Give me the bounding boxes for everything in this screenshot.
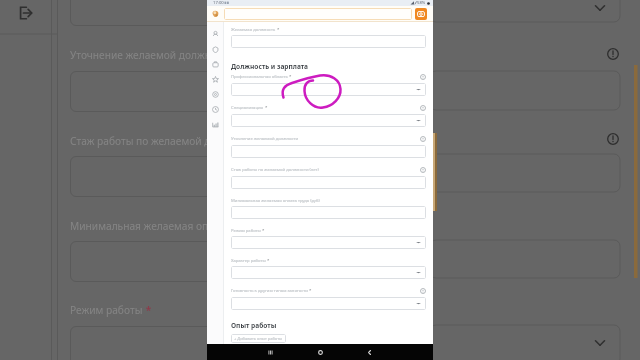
staticText: * <box>261 228 265 234</box>
button[interactable]: Protection <box>208 42 223 57</box>
staticText: * <box>266 258 270 264</box>
staticText: Режим работы <box>70 303 143 317</box>
button[interactable]: Help <box>419 104 426 111</box>
button[interactable]: Profile <box>208 27 223 42</box>
button[interactable]: Back <box>362 345 376 359</box>
staticText: 17:00 <box>213 0 224 6</box>
staticText: Уточнение желаемой должности <box>70 48 234 62</box>
button[interactable] <box>231 145 426 158</box>
staticText: 58% <box>417 0 426 6</box>
button[interactable]: History <box>208 102 223 117</box>
button[interactable]: Help <box>419 287 426 294</box>
staticText: + Добавить опыт работы <box>234 336 283 341</box>
button[interactable]: Take photo <box>415 8 427 20</box>
button[interactable]: + Добавить опыт работы <box>231 334 286 343</box>
button[interactable] <box>70 326 220 360</box>
staticText: * <box>264 105 268 111</box>
staticText: Минимальная желаемая оплата труда <box>70 219 260 233</box>
staticText: * <box>276 27 280 33</box>
staticText: Опыт работы <box>231 321 277 330</box>
staticText: Готовность к другим типам занятости <box>231 288 308 294</box>
staticText: Стаж работы по желаемой должности <box>70 134 259 148</box>
button[interactable]: Home <box>313 345 327 359</box>
button[interactable] <box>231 236 426 249</box>
button[interactable] <box>231 35 426 48</box>
staticText: Характер работы <box>231 258 266 264</box>
staticText: * <box>308 288 312 294</box>
button[interactable] <box>231 206 426 219</box>
staticText: Уточнение желаемой должности <box>231 136 299 142</box>
button[interactable]: Favourites <box>208 72 223 87</box>
staticText: Профессиональная область <box>231 74 288 80</box>
staticText: Специализация <box>231 105 264 111</box>
staticText: Стаж работы по желаемой должности (лет) <box>231 167 319 173</box>
button[interactable] <box>231 114 426 127</box>
staticText: Режим работы <box>231 228 261 234</box>
staticText: Должность и зарплата <box>231 62 309 71</box>
button[interactable]: Help <box>419 135 426 142</box>
button[interactable] <box>231 266 426 279</box>
button[interactable] <box>70 241 220 282</box>
button[interactable] <box>231 176 426 189</box>
button[interactable]: More <box>208 117 223 132</box>
button[interactable]: Browser logo <box>211 9 220 18</box>
button[interactable] <box>231 297 426 310</box>
button[interactable]: Help <box>419 166 426 173</box>
staticText: * <box>288 74 292 80</box>
button[interactable]: Help <box>419 73 426 80</box>
staticText: Минимальная желаемая оплата труда (руб) <box>231 198 320 204</box>
button[interactable] <box>231 83 426 96</box>
button[interactable] <box>70 156 220 197</box>
button[interactable]: Saved <box>208 57 223 72</box>
staticText: Желаемая должность <box>231 27 276 33</box>
button[interactable] <box>70 0 220 26</box>
button[interactable] <box>70 71 220 112</box>
staticText: * <box>143 303 152 317</box>
button[interactable]: Log out <box>17 4 35 22</box>
button[interactable]: Address bar <box>224 8 412 20</box>
button[interactable]: Recent apps <box>263 345 277 359</box>
button[interactable]: Settings <box>208 87 223 102</box>
